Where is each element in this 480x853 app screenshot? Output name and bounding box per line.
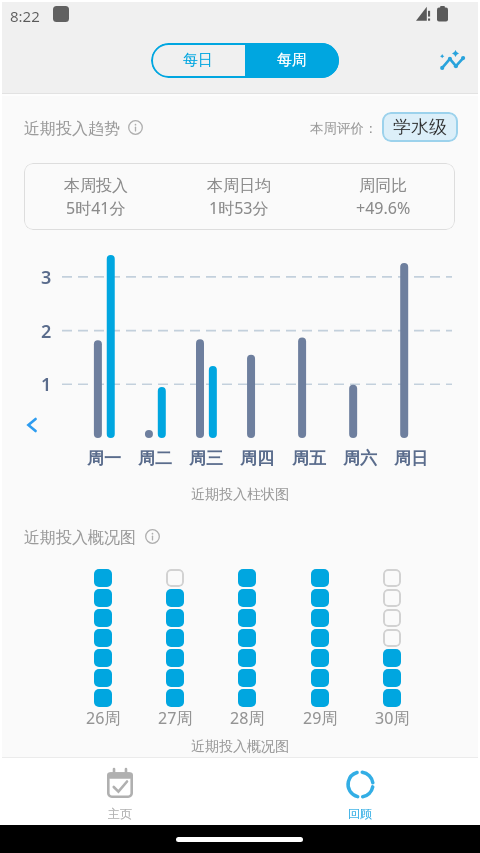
staticText: 回顾: [348, 806, 372, 821]
staticText: +49.6%: [356, 197, 411, 219]
staticText: 周一: [87, 448, 121, 469]
staticText: 2: [41, 319, 52, 344]
staticText: 27周: [158, 707, 193, 729]
staticText: 每周: [277, 51, 307, 70]
button[interactable]: Previous week: [22, 415, 42, 435]
staticText: 近期投入概况图: [0, 738, 480, 756]
staticText: 1: [41, 372, 52, 397]
button[interactable]: 每日: [151, 43, 245, 78]
staticText: 周五: [292, 448, 326, 469]
staticText: 每日: [183, 51, 213, 70]
staticText: 1时53分: [209, 197, 269, 219]
staticText: 主页: [108, 806, 132, 821]
button[interactable]: Analytics: [435, 44, 469, 78]
staticText: 周六: [343, 448, 377, 469]
staticText: 学水级: [393, 116, 447, 139]
staticText: 周三: [189, 448, 223, 469]
staticText: 周日: [394, 448, 428, 469]
button[interactable]: 学水级: [382, 112, 458, 142]
staticText: 周同比: [359, 176, 407, 196]
staticText: 5时41分: [66, 197, 126, 219]
button[interactable]: 主页: [0, 758, 240, 825]
staticText: 近期投入柱状图: [0, 486, 480, 504]
staticText: 周二: [138, 448, 172, 469]
staticText: 本周投入: [64, 176, 128, 196]
staticText: 近期投入概况图: [24, 528, 136, 548]
staticText: 近期投入趋势: [24, 119, 120, 139]
button[interactable]: 回顾: [240, 758, 480, 825]
staticText: 26周: [86, 707, 121, 729]
staticText: 周四: [240, 448, 274, 469]
staticText: 3: [41, 265, 52, 290]
button[interactable]: 每周: [245, 43, 339, 78]
staticText: 本周评价：: [310, 120, 378, 137]
staticText: 30周: [375, 707, 410, 729]
staticText: 28周: [230, 707, 265, 729]
staticText: 本周日均: [207, 176, 271, 196]
staticText: 29周: [303, 707, 338, 729]
staticText: 8:22: [10, 6, 40, 26]
